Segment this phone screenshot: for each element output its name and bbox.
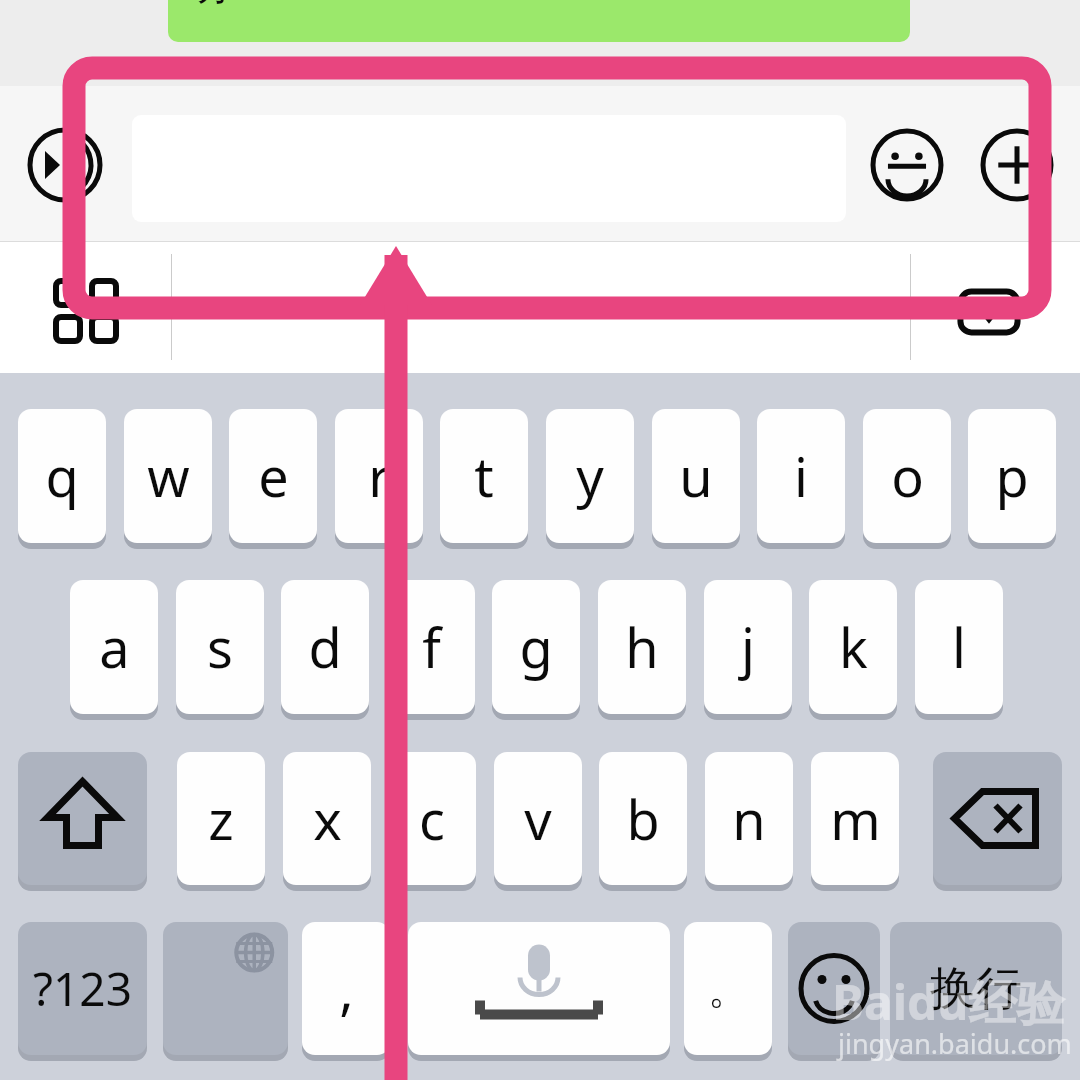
button[interactable]: s [176, 580, 264, 720]
staticText: 。 [708, 964, 748, 1014]
button[interactable]: k [809, 580, 897, 720]
button[interactable]: 换行 [890, 922, 1062, 1061]
staticText: , [339, 952, 354, 1026]
staticText: t [474, 439, 494, 513]
staticText: p [995, 439, 1029, 513]
staticText: k [839, 610, 868, 684]
button[interactable]: r [335, 409, 423, 549]
button[interactable]: Space [408, 922, 670, 1061]
button[interactable]: Voice input [25, 125, 105, 205]
staticText: e [258, 439, 289, 513]
staticText: h [625, 610, 659, 684]
button[interactable]: v [494, 752, 582, 891]
button[interactable]: q [18, 409, 106, 549]
button[interactable]: i [757, 409, 845, 549]
staticText: g [519, 610, 553, 684]
staticText: z [208, 782, 234, 856]
staticText: x [313, 782, 342, 856]
button[interactable]: x [283, 752, 371, 891]
button[interactable]: o [863, 409, 951, 549]
button[interactable]: b [599, 752, 687, 891]
staticText: a [99, 610, 130, 684]
button[interactable]: Backspace [933, 752, 1062, 891]
button[interactable]: c [388, 752, 476, 891]
staticText: b [626, 782, 660, 856]
button[interactable]: Switch input language [163, 922, 288, 1061]
staticText: ?123 [33, 957, 132, 1020]
button[interactable]: Emoji [867, 125, 947, 205]
button[interactable]: a [70, 580, 158, 720]
staticText: u [679, 439, 713, 513]
staticText: w [147, 439, 190, 513]
staticText: v [524, 782, 552, 856]
staticText: 换行 [930, 960, 1022, 1018]
staticText: 明: [188, 0, 239, 11]
button[interactable]: g [492, 580, 580, 720]
button[interactable]: ?123 [18, 922, 147, 1061]
staticText: Baidu经验 [832, 969, 1065, 1035]
staticText: r [368, 439, 391, 513]
button[interactable]: , [302, 922, 390, 1061]
button[interactable]: p [968, 409, 1056, 549]
button[interactable]: l [915, 580, 1003, 720]
staticText: n [732, 782, 766, 856]
button[interactable]: e [229, 409, 317, 549]
button[interactable]: More options [977, 125, 1057, 205]
button[interactable]: z [177, 752, 265, 891]
staticText: j [741, 610, 755, 684]
staticText: y [576, 439, 604, 513]
staticText: s [207, 610, 233, 684]
button[interactable]: 。 [684, 922, 772, 1061]
button[interactable]: t [440, 409, 528, 549]
button[interactable]: w [124, 409, 212, 549]
button[interactable]: u [652, 409, 740, 549]
staticText: f [422, 610, 441, 684]
button[interactable]: h [598, 580, 686, 720]
staticText: l [952, 610, 966, 684]
staticText: c [419, 782, 445, 856]
staticText: q [45, 439, 79, 513]
button[interactable]: Apps [50, 275, 122, 347]
staticText: o [891, 439, 924, 513]
button[interactable]: y [546, 409, 634, 549]
button[interactable]: d [281, 580, 369, 720]
staticText: jingyan.baidu.com [838, 1025, 1072, 1062]
button[interactable]: Shift [18, 752, 147, 891]
staticText: m [830, 782, 881, 856]
button[interactable]: m [811, 752, 899, 891]
button[interactable]: j [704, 580, 792, 720]
staticText: i [794, 439, 808, 513]
button[interactable]: n [705, 752, 793, 891]
button[interactable]: Emoji keyboard [788, 922, 880, 1061]
button[interactable]: f [387, 580, 475, 720]
button[interactable]: Hide keyboard [952, 275, 1026, 349]
staticText: d [308, 610, 342, 684]
